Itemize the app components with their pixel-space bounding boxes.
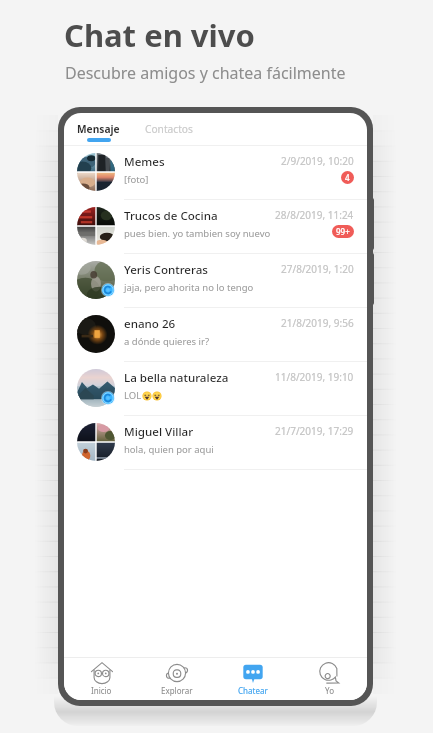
staticText: La bella naturaleza (124, 370, 229, 386)
staticText: Yo (325, 685, 334, 696)
button[interactable]: Memes (64, 146, 367, 199)
button[interactable]: Trucos de Cocina (64, 200, 367, 253)
staticText: 99+ (336, 226, 350, 237)
button[interactable]: Explorar (139, 662, 215, 696)
button[interactable]: Yeris Contreras (64, 254, 367, 307)
staticText: a dónde quieres ir? (124, 335, 210, 348)
staticText: LOL (124, 389, 142, 402)
staticText: 27/8/2019, 1:20 (281, 262, 354, 276)
staticText: Chatear (238, 685, 268, 696)
staticText: Explorar (161, 685, 193, 696)
staticText: enano 26 (124, 316, 176, 332)
staticText: 21/7/2019, 17:29 (275, 424, 354, 438)
staticText: Trucos de Cocina (124, 208, 218, 224)
staticText: Memes (124, 154, 165, 170)
button[interactable]: enano 26 (64, 308, 367, 361)
staticText: [foto] (124, 173, 149, 186)
button[interactable]: Mensaje (77, 122, 120, 142)
staticText: Contactos (145, 122, 193, 136)
staticText: Miguel Villar (124, 424, 194, 440)
button[interactable]: Chatear (215, 662, 291, 696)
staticText: jaja, pero ahorita no lo tengo (124, 281, 254, 294)
staticText: Chat en vivo (64, 14, 255, 56)
staticText: hola, quien por aqui (124, 443, 214, 456)
staticText: 11/8/2019, 19:10 (275, 370, 354, 384)
staticText: pues bien. yo tambien soy nuevo (124, 227, 271, 240)
button[interactable]: Yo (291, 662, 367, 696)
button[interactable]: Contactos (145, 122, 193, 136)
staticText: Inicio (91, 685, 112, 696)
staticText: 2/9/2019, 10:20 (281, 154, 354, 168)
staticText: Mensaje (77, 122, 120, 136)
staticText: 21/8/2019, 9:56 (281, 316, 354, 330)
button[interactable]: La bella naturaleza (64, 362, 367, 415)
staticText: 4 (345, 172, 350, 183)
staticText: Yeris Contreras (124, 262, 208, 278)
staticText: Descubre amigos y chatea fácilmente (65, 62, 346, 84)
staticText: 28/8/2019, 11:24 (275, 208, 354, 222)
button[interactable]: Miguel Villar (64, 416, 367, 469)
button[interactable]: Inicio (64, 662, 139, 696)
